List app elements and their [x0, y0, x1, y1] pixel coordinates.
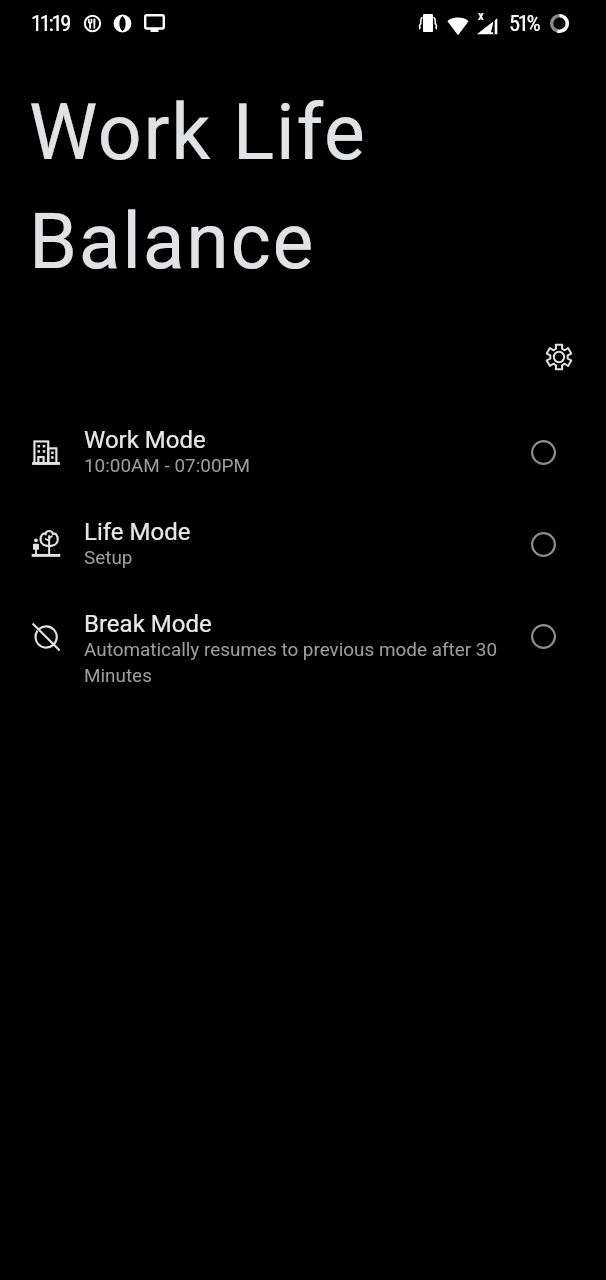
button[interactable]: Select Life Mode [520, 521, 567, 568]
button[interactable]: Life Mode [0, 515, 606, 607]
staticText: Work Mode [84, 426, 206, 454]
button[interactable]: Settings [535, 333, 582, 380]
button[interactable]: Work Mode [0, 423, 606, 515]
staticText: 11:19 [31, 10, 70, 36]
staticText: x [478, 8, 484, 23]
button[interactable]: Break Mode [0, 607, 606, 699]
staticText: Setup [84, 546, 133, 568]
staticText: Break Mode [84, 610, 212, 638]
button[interactable]: Select Work Mode [520, 429, 567, 476]
staticText: Life Mode [84, 518, 191, 546]
staticText: Automatically resumes to previous mode a… [84, 638, 512, 686]
button[interactable]: Select Break Mode [520, 613, 567, 660]
staticText: 51% [509, 10, 539, 36]
staticText: 10:00AM - 07:00PM [84, 454, 250, 476]
staticText: Work Life Balance [29, 88, 367, 287]
